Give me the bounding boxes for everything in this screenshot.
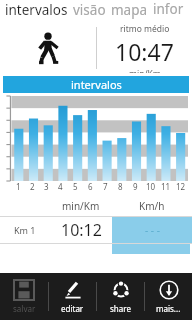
button[interactable]: visão bbox=[73, 1, 106, 19]
staticText: Km/h bbox=[139, 199, 165, 213]
staticText: ritmo médio bbox=[120, 23, 170, 35]
staticText: 3 bbox=[44, 181, 49, 192]
button[interactable]: share bbox=[97, 273, 144, 320]
staticText: mapa bbox=[111, 1, 148, 19]
button[interactable]: mais... bbox=[145, 273, 192, 320]
staticText: intervalos bbox=[71, 77, 122, 92]
button[interactable]: salvar bbox=[0, 273, 48, 320]
staticText: 8 bbox=[118, 181, 123, 192]
staticText: 5 bbox=[73, 181, 78, 192]
staticText: share bbox=[110, 303, 131, 314]
staticText: 9 bbox=[133, 181, 138, 192]
staticText: 10 bbox=[146, 181, 156, 192]
staticText: editar bbox=[61, 303, 84, 314]
button[interactable]: intervalos bbox=[5, 1, 68, 19]
staticText: - - - bbox=[145, 223, 160, 237]
button[interactable]: editar bbox=[49, 273, 96, 320]
button[interactable]: inform bbox=[153, 0, 192, 20]
staticText: 10:47 bbox=[115, 36, 174, 67]
staticText: 2 bbox=[30, 181, 35, 192]
staticText: mais... bbox=[156, 303, 181, 314]
staticText: visão bbox=[73, 1, 106, 19]
button[interactable]: mapa bbox=[111, 1, 148, 19]
staticText: 6 bbox=[88, 181, 93, 192]
staticText: 12 bbox=[176, 181, 186, 192]
button[interactable]: Km 1 bbox=[0, 217, 192, 243]
staticText: 11 bbox=[161, 181, 171, 192]
staticText: 7 bbox=[103, 181, 108, 192]
staticText: 10:12 bbox=[61, 219, 102, 241]
staticText: inform bbox=[153, 0, 192, 20]
button[interactable]: intervalos bbox=[3, 76, 189, 93]
staticText: 4 bbox=[58, 181, 63, 192]
staticText: min/Km bbox=[62, 199, 100, 213]
staticText: salvar bbox=[13, 303, 36, 314]
staticText: Km 1 bbox=[14, 224, 36, 236]
staticText: min/Km bbox=[129, 68, 161, 73]
staticText: 1 bbox=[16, 181, 21, 192]
staticText: intervalos bbox=[5, 1, 68, 19]
